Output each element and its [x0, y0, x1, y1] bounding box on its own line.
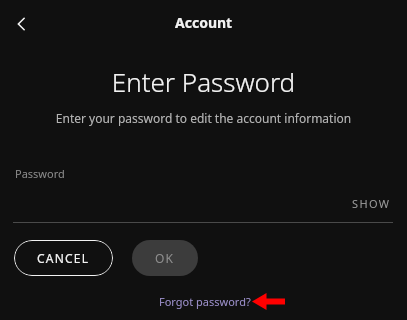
button[interactable]: SHOW	[350, 194, 393, 213]
staticText: Password	[15, 166, 65, 181]
button[interactable]: CANCEL	[14, 240, 113, 276]
staticText: Forgot password?	[159, 294, 251, 309]
button[interactable]: Forgot password?	[157, 291, 253, 312]
staticText: Account	[175, 13, 233, 32]
staticText: Enter Password	[0, 64, 407, 99]
staticText: OK	[155, 250, 175, 266]
button[interactable]: Back	[4, 6, 40, 42]
button[interactable]: OK	[132, 240, 198, 276]
staticText: SHOW	[352, 196, 391, 211]
staticText: CANCEL	[37, 250, 90, 266]
staticText: Enter your password to edit the account …	[0, 110, 407, 126]
